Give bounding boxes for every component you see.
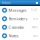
staticText: 9:41 xyxy=(31,8,38,12)
button[interactable]: Calendar xyxy=(0,23,40,31)
button[interactable]: Messages xyxy=(0,6,40,14)
staticText: Messages xyxy=(8,8,26,13)
button[interactable]: Reminders xyxy=(0,14,40,23)
staticText: Reminders xyxy=(8,16,27,21)
staticText: Sun xyxy=(33,34,38,37)
staticText: Calendar xyxy=(8,25,24,30)
staticText: Yest xyxy=(33,17,38,20)
button[interactable]: Compose xyxy=(36,2,38,4)
staticText: Mon xyxy=(32,25,38,29)
staticText: Inbox xyxy=(2,1,10,5)
staticText: Notes xyxy=(8,33,18,38)
button[interactable]: Notes xyxy=(0,31,40,40)
